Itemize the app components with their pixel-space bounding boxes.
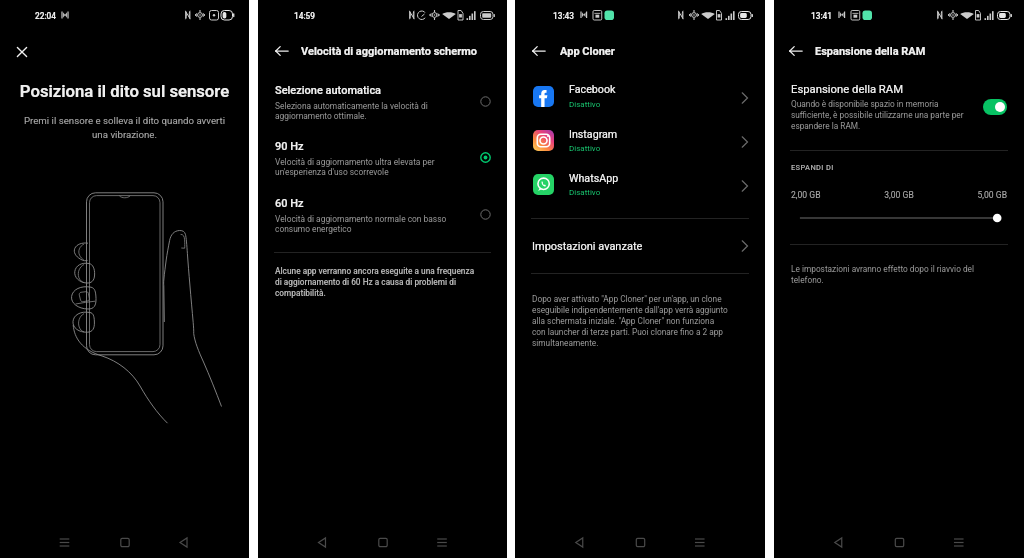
- staticText: Disattivo: [569, 188, 601, 197]
- button[interactable]: Back: [785, 40, 807, 62]
- staticText: ESPANDI DI: [791, 163, 834, 172]
- staticText: App Cloner: [560, 45, 615, 58]
- button[interactable]: [515, 224, 765, 266]
- staticText: 14:59: [294, 11, 316, 21]
- staticText: WhatsApp: [569, 172, 619, 185]
- staticText: Le impostazioni avranno effetto dopo il …: [791, 264, 975, 285]
- staticText: 22:04: [35, 11, 57, 21]
- staticText: Espansione della RAM: [791, 83, 904, 96]
- staticText: 3,00 GB: [774, 190, 1024, 200]
- staticText: Disattivo: [569, 144, 601, 153]
- staticText: 60 Hz: [275, 197, 304, 210]
- staticText: Espansione della RAM: [815, 45, 926, 58]
- staticText: Seleziona automaticamente la velocità di…: [275, 101, 428, 121]
- staticText: 90 Hz: [275, 140, 304, 153]
- button[interactable]: [774, 80, 1024, 132]
- staticText: Premi il sensore e solleva il dito quand…: [0, 115, 249, 140]
- button[interactable]: Espandi di slider: [774, 211, 1024, 225]
- button[interactable]: Close: [11, 41, 33, 63]
- staticText: Impostazioni avanzate: [532, 240, 643, 253]
- button[interactable]: [258, 137, 507, 187]
- staticText: Quando è disponibile spazio in memoria s…: [791, 99, 964, 131]
- button[interactable]: Back: [515, 36, 765, 66]
- button[interactable]: Back: [258, 36, 507, 66]
- staticText: Facebook: [569, 83, 616, 96]
- staticText: Selezione automatica: [275, 84, 382, 97]
- staticText: 5,00 GB: [774, 190, 1007, 200]
- button[interactable]: [258, 81, 507, 131]
- button[interactable]: [515, 168, 765, 212]
- button[interactable]: [258, 194, 507, 244]
- staticText: Dopo aver attivato "App Cloner" per un'a…: [532, 294, 728, 348]
- button[interactable]: Back: [271, 40, 293, 62]
- staticText: Velocità di aggiornamento ultra elevata …: [275, 157, 435, 177]
- staticText: 13:41: [811, 11, 833, 21]
- staticText: Velocità di aggiornamento schermo: [301, 45, 477, 58]
- staticText: Disattivo: [569, 100, 601, 109]
- button[interactable]: [515, 124, 765, 168]
- button[interactable]: [515, 80, 765, 124]
- button[interactable]: Back: [774, 36, 1024, 66]
- staticText: Posiziona il dito sul sensore: [0, 82, 249, 102]
- button[interactable]: Espansione della RAM toggle: [983, 99, 1007, 115]
- staticText: Velocità di aggiornamento normale con ba…: [275, 214, 447, 234]
- staticText: Alcune app verranno ancora eseguite a un…: [275, 266, 475, 298]
- staticText: Instagram: [569, 128, 618, 141]
- staticText: 13:43: [553, 11, 575, 21]
- button[interactable]: Back: [528, 40, 550, 62]
- staticText: 2,00 GB: [791, 190, 821, 200]
